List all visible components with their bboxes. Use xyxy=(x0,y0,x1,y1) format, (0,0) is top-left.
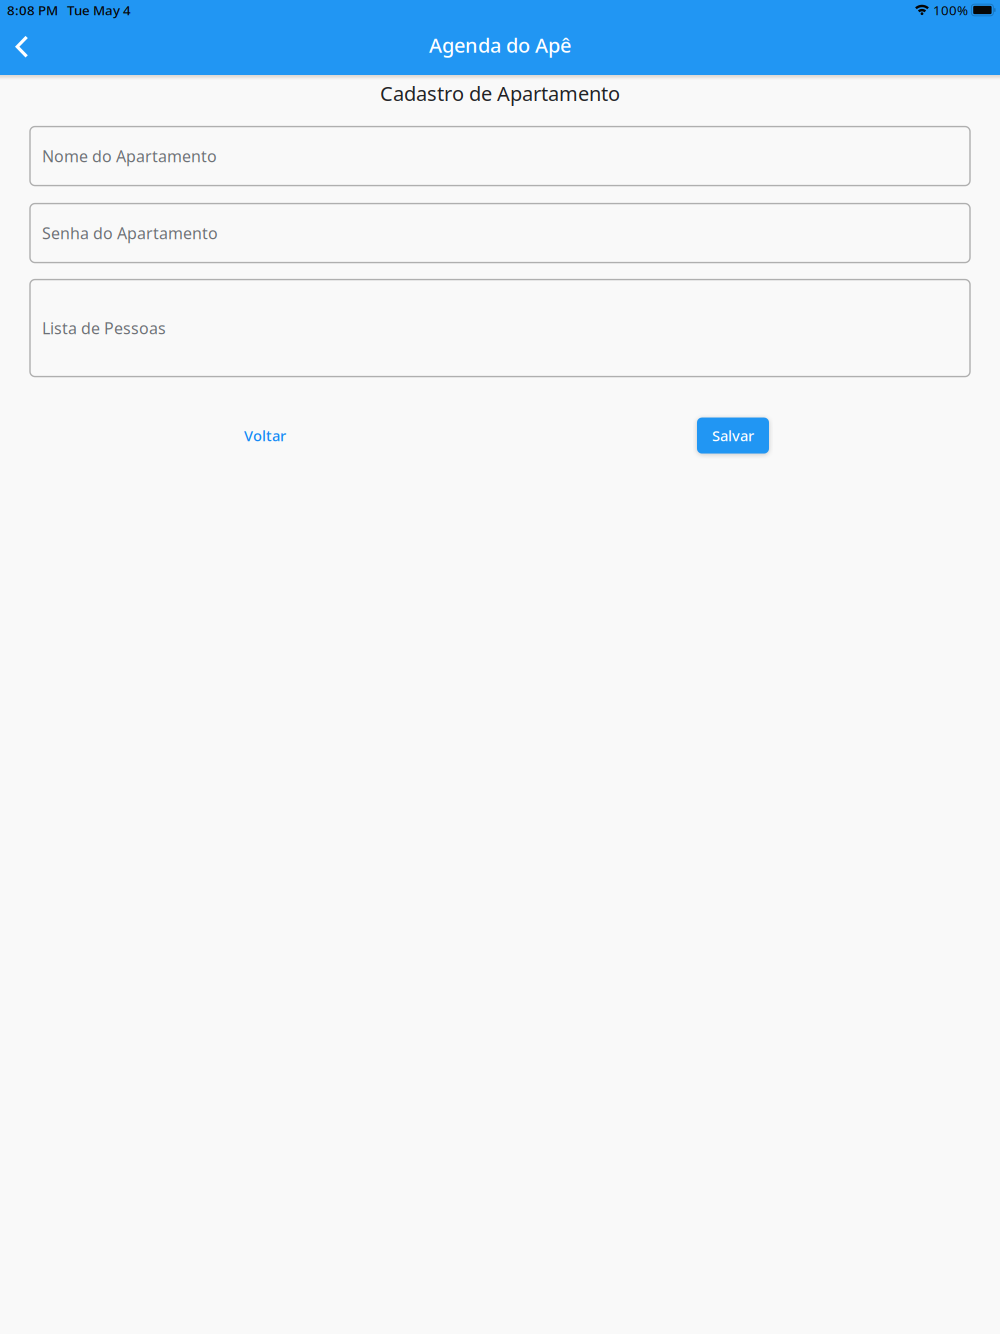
button[interactable]: Salvar xyxy=(697,418,769,454)
button[interactable]: Nome do Apartamento xyxy=(30,127,970,186)
staticText: Voltar xyxy=(244,426,286,445)
staticText: Cadastro de Apartamento xyxy=(380,80,620,107)
staticText: 100% xyxy=(933,1,968,19)
button[interactable]: Lista de Pessoas xyxy=(30,280,970,377)
button[interactable]: Voltar xyxy=(30,418,500,454)
staticText: Nome do Apartamento xyxy=(42,145,217,167)
button[interactable]: Senha do Apartamento xyxy=(30,204,970,263)
staticText: Tue May 4 xyxy=(67,1,131,19)
staticText: Salvar xyxy=(712,426,754,445)
staticText: Agenda do Apê xyxy=(429,32,571,58)
button[interactable]: Back xyxy=(0,26,44,75)
staticText: Senha do Apartamento xyxy=(42,222,218,244)
staticText: 8:08 PM xyxy=(7,1,58,19)
staticText: Lista de Pessoas xyxy=(42,317,166,339)
